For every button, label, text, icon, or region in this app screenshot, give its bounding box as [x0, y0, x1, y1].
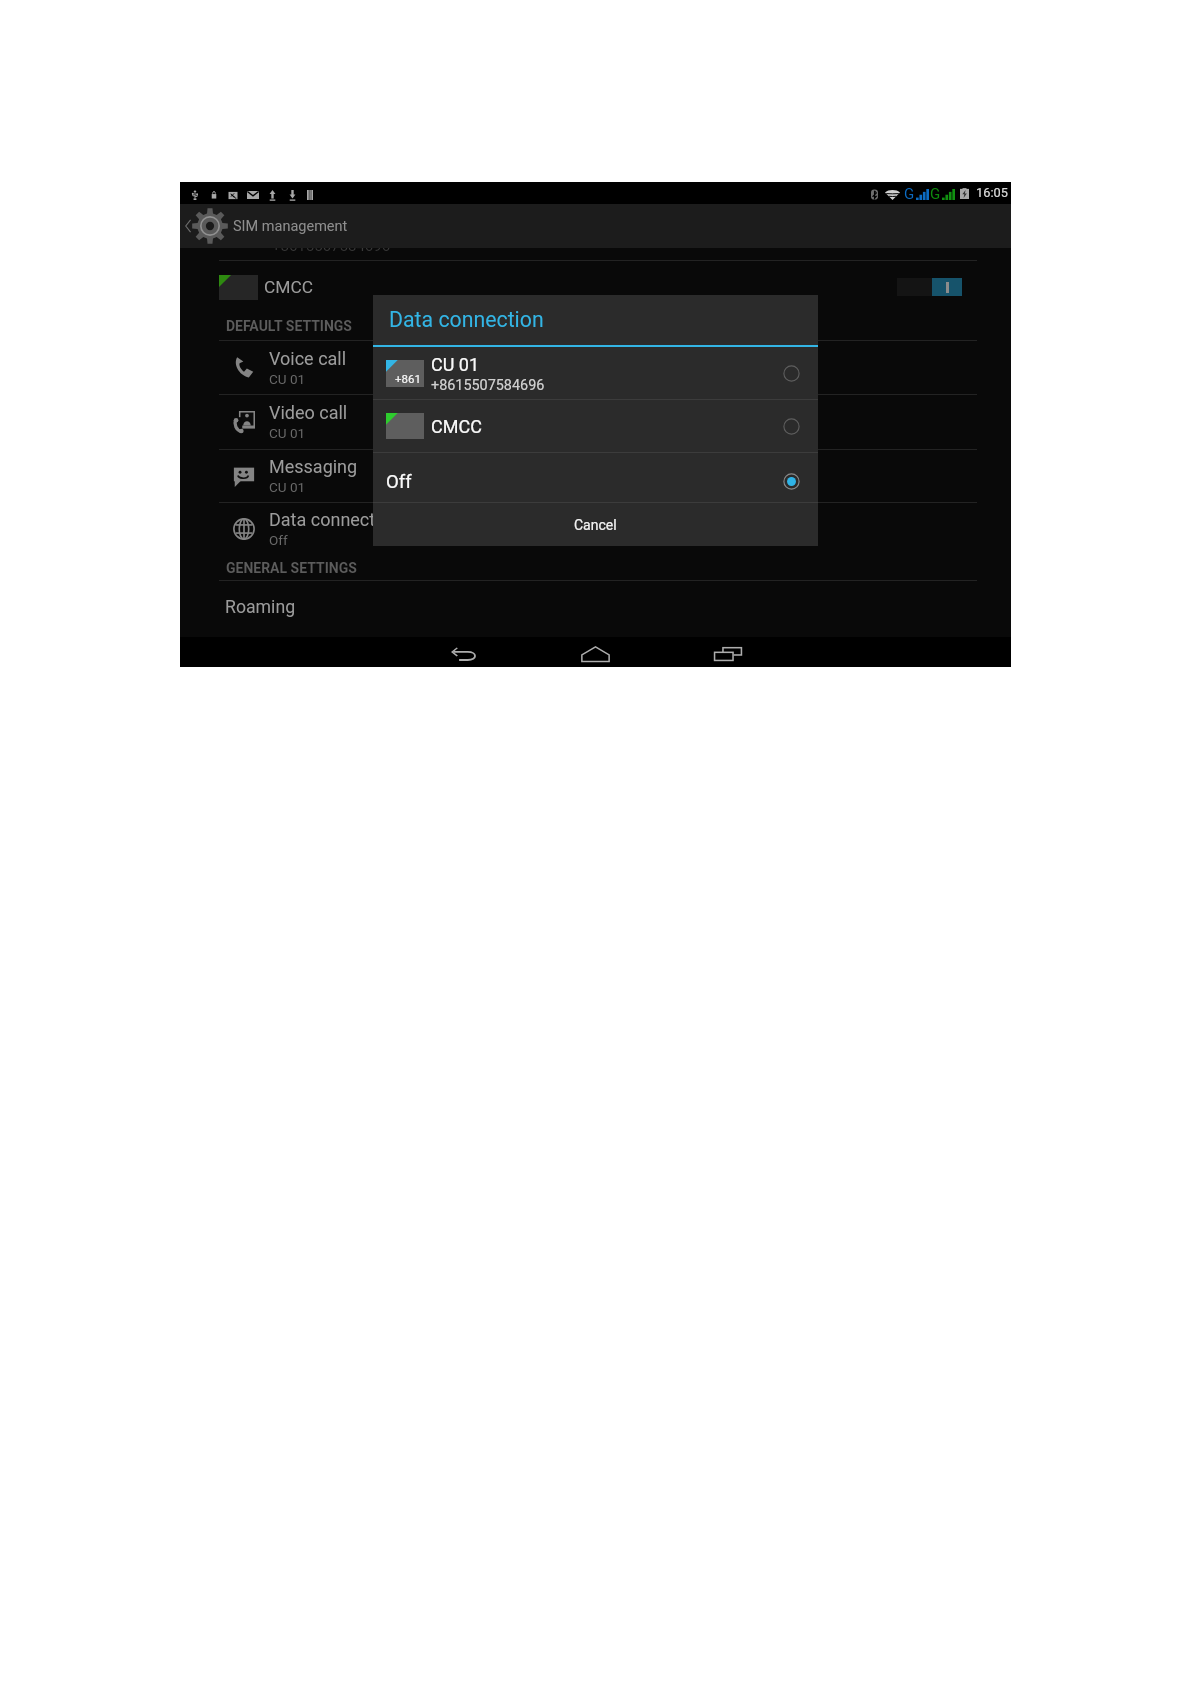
staticText: Video call	[269, 402, 348, 423]
staticText: Data connection	[269, 509, 400, 530]
staticText: 16:05	[976, 185, 1008, 200]
button[interactable]: Navigate up	[180, 204, 1011, 248]
button[interactable]: Voice call	[180, 340, 1011, 394]
button[interactable]: Cancel	[373, 503, 818, 546]
button[interactable]: Data connection	[180, 502, 1011, 555]
staticText: CMCC	[431, 416, 482, 437]
button[interactable]: Navigate up	[180, 204, 228, 248]
staticText: CU 01	[269, 371, 306, 387]
staticText: CMCC	[264, 277, 314, 297]
staticText: DEFAULT SETTINGS	[226, 318, 352, 334]
button[interactable]: Messaging	[180, 449, 1011, 502]
button[interactable]: CMCC	[180, 266, 1011, 308]
staticText: G	[930, 185, 941, 203]
button[interactable]: Roaming	[180, 585, 1011, 629]
button[interactable]: SIM on/off	[897, 278, 962, 296]
staticText: SIM management	[233, 218, 348, 235]
staticText: CU 01	[269, 425, 306, 441]
button[interactable]: Back	[430, 637, 498, 667]
staticText: +861	[395, 372, 421, 385]
staticText: Off	[386, 471, 412, 493]
staticText: G	[904, 185, 915, 203]
staticText: CU 01	[431, 354, 480, 375]
button[interactable]: Video call	[180, 394, 1011, 449]
button[interactable]: Off	[373, 457, 818, 506]
staticText: +8615507584696	[431, 377, 545, 394]
button[interactable]: +861	[373, 347, 818, 400]
staticText: Messaging	[269, 456, 358, 477]
staticText: Cancel	[574, 517, 617, 533]
button[interactable]: Recent apps	[694, 637, 762, 667]
staticText: Roaming	[225, 597, 296, 618]
button[interactable]: CMCC	[373, 400, 818, 452]
staticText: Off	[269, 532, 288, 548]
button[interactable]: Home	[561, 637, 629, 667]
staticText: CU 01	[269, 479, 306, 495]
staticText: Data connection	[389, 307, 544, 332]
staticText: +8615507584696	[272, 248, 391, 254]
staticText: Voice call	[269, 348, 347, 369]
staticText: GENERAL SETTINGS	[226, 560, 357, 576]
